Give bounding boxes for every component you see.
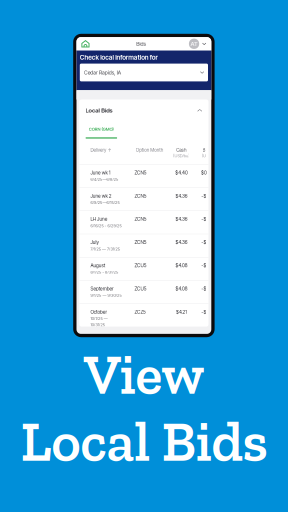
staticText: Cedar Rapids, IA <box>99 134 210 153</box>
staticText: June wk 1 <box>118 435 178 453</box>
staticText: Local Bids <box>104 246 185 267</box>
staticText: ZCN5 <box>250 435 286 453</box>
staticText: CORN (GMO) <box>114 306 189 321</box>
staticText: Delivery ↑ <box>118 368 182 385</box>
staticText: Check local information for <box>86 86 288 109</box>
button[interactable]: CORN (GMO) <box>104 289 198 342</box>
button[interactable]: Cedar Rapids, IA <box>86 117 288 170</box>
button[interactable]: Home <box>76 37 127 77</box>
staticText: 6/4/25—6/8/25 <box>118 457 202 471</box>
button[interactable]: June wk 1 <box>85 418 288 488</box>
staticText: View <box>83 341 204 408</box>
staticText: Local Bids <box>20 408 267 475</box>
